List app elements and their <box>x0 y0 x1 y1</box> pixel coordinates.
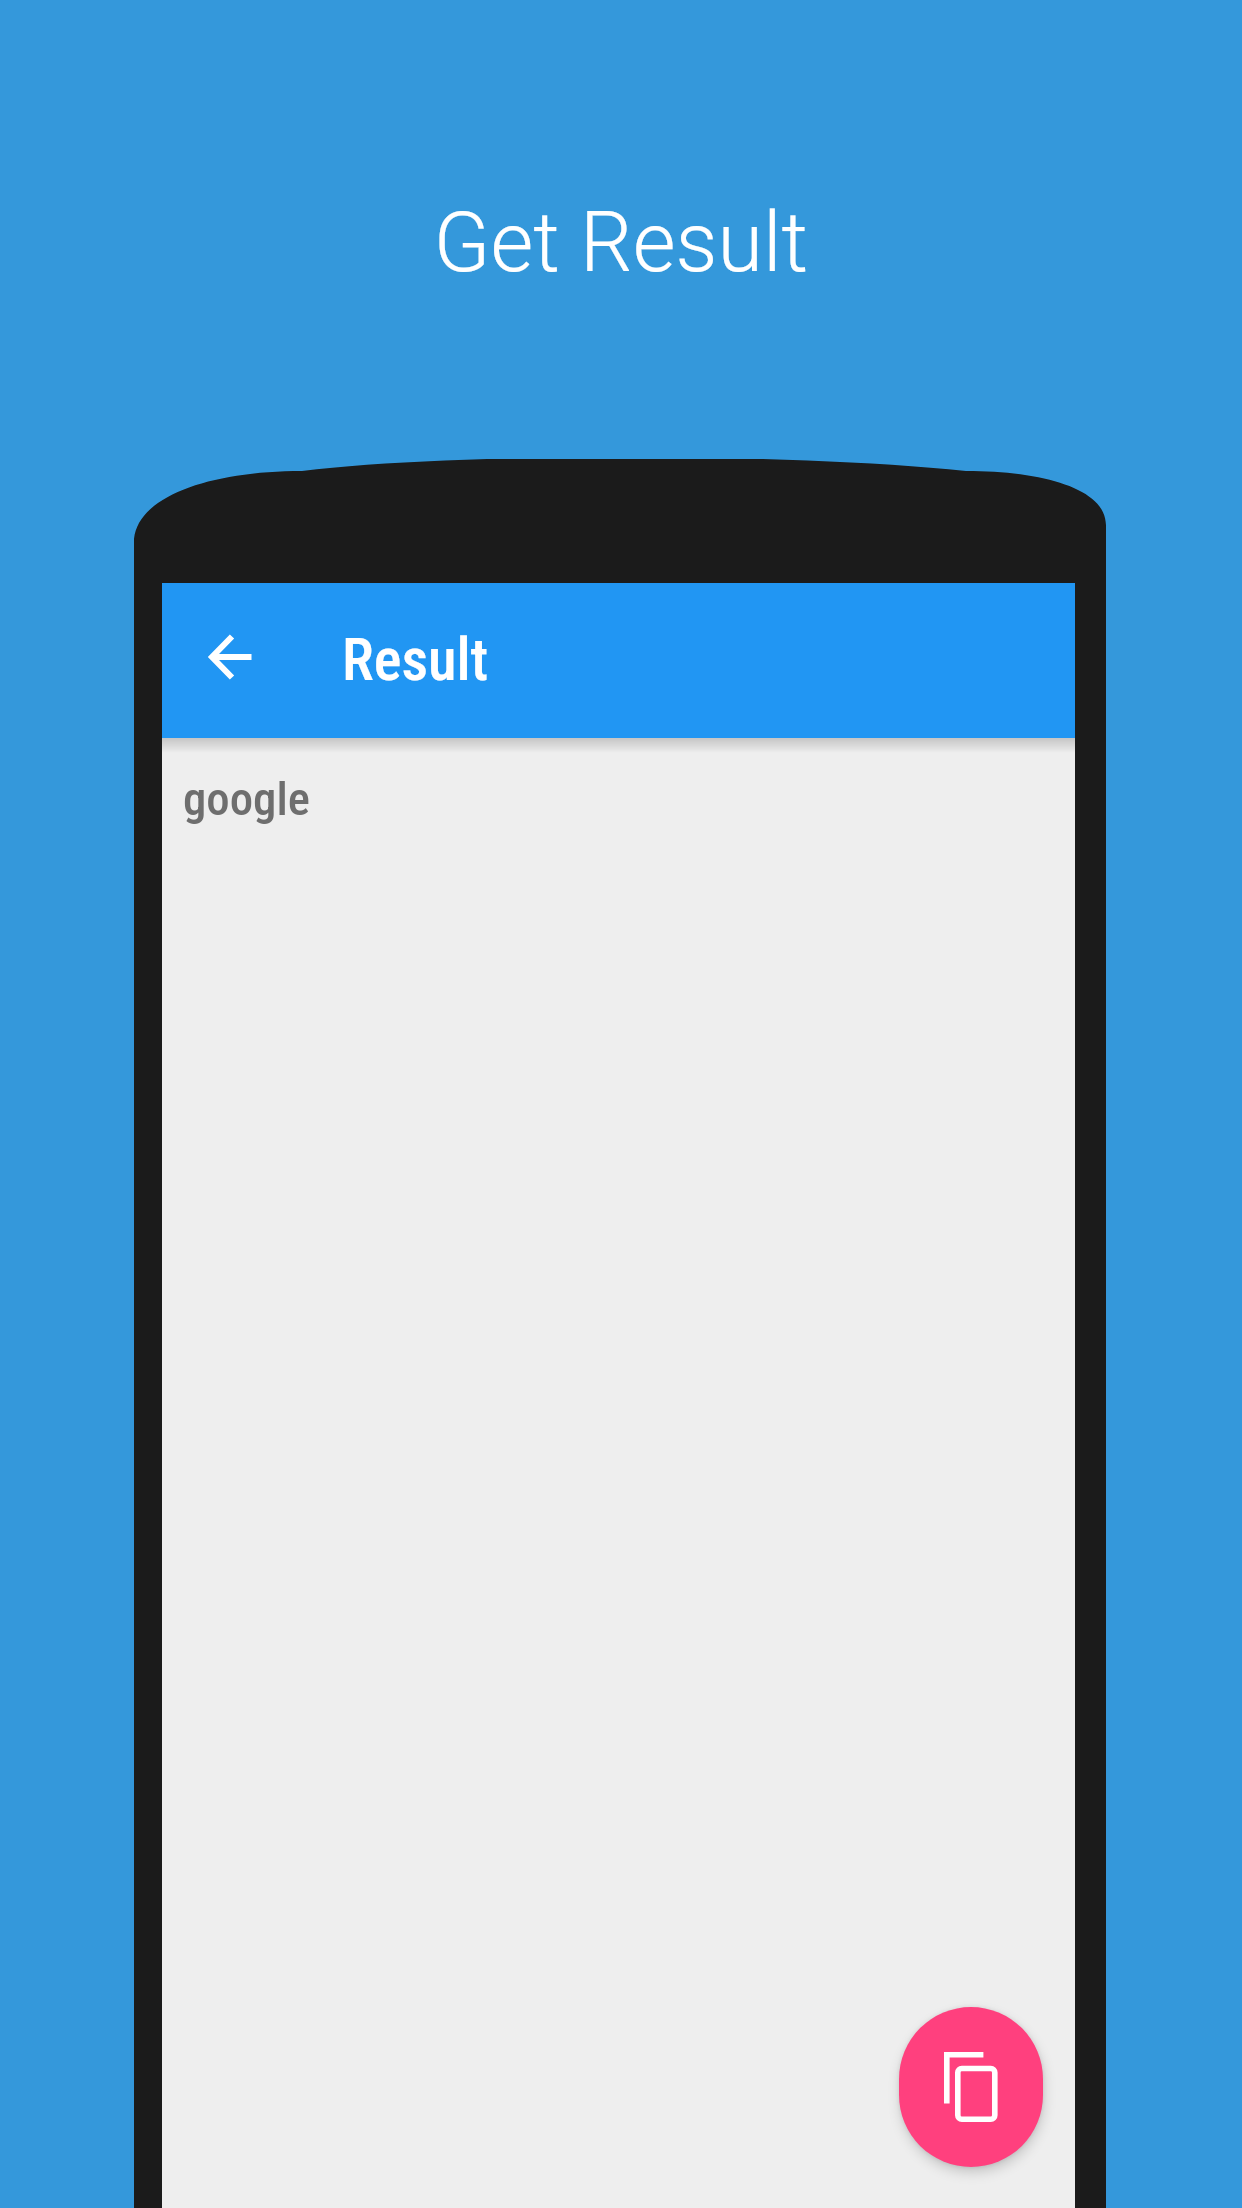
staticText: Get Result <box>0 194 1242 291</box>
staticText: Result <box>342 626 489 694</box>
button[interactable]: Back <box>186 611 274 703</box>
staticText: google <box>183 772 310 827</box>
button[interactable]: Copy <box>899 2007 1043 2167</box>
